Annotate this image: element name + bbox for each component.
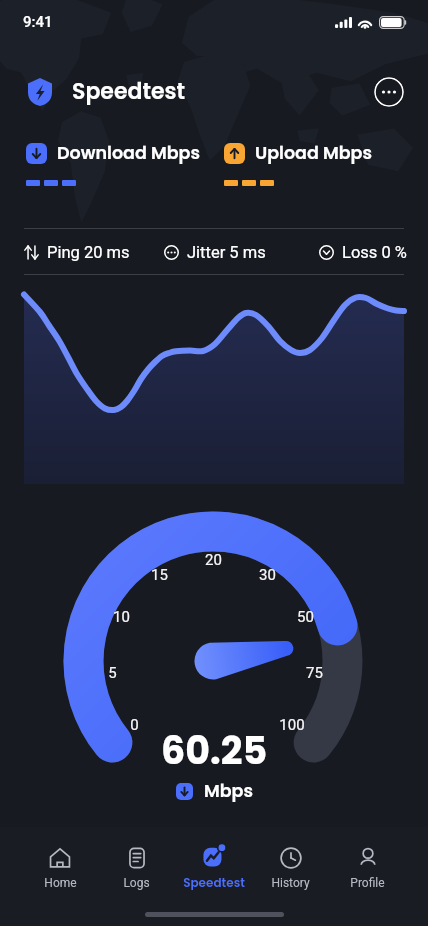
button[interactable]: Profile [329, 827, 406, 909]
button[interactable]: Jitter 5 ms [164, 240, 266, 264]
staticText: Jitter 5 ms [187, 243, 266, 262]
staticText: 30 [259, 566, 276, 584]
staticText: Loss 0 % [342, 243, 407, 262]
staticText: Ping 20 ms [47, 243, 130, 262]
button[interactable]: Ping 20 ms [24, 240, 130, 264]
staticText: Speedtest [183, 874, 245, 891]
staticText: Home [44, 876, 77, 890]
staticText: 10 [113, 608, 130, 626]
staticText: 15 [151, 566, 168, 584]
staticText: Mbps [204, 779, 253, 804]
button[interactable]: Loss 0 % [319, 240, 407, 264]
staticText: 50 [297, 608, 314, 626]
staticText: 20 [205, 551, 222, 569]
staticText: 75 [306, 664, 323, 682]
staticText: 0 [130, 716, 139, 734]
staticText: 5 [108, 664, 117, 682]
button[interactable]: Home [22, 827, 98, 909]
staticText: History [271, 876, 310, 890]
staticText: 100 [279, 716, 305, 734]
button[interactable]: More options [374, 77, 404, 107]
staticText: Download Mbps [57, 141, 200, 166]
staticText: Speedtest [72, 76, 186, 107]
staticText: 60.25 [161, 724, 268, 777]
button[interactable]: Speedtest [175, 827, 252, 909]
staticText: Upload Mbps [255, 141, 372, 166]
button[interactable]: Logs [98, 827, 175, 909]
staticText: Logs [123, 876, 150, 890]
button[interactable]: History [252, 827, 329, 909]
staticText: 9:41 [23, 13, 53, 31]
button[interactable]: Download direction [176, 783, 193, 800]
staticText: Profile [350, 876, 385, 890]
